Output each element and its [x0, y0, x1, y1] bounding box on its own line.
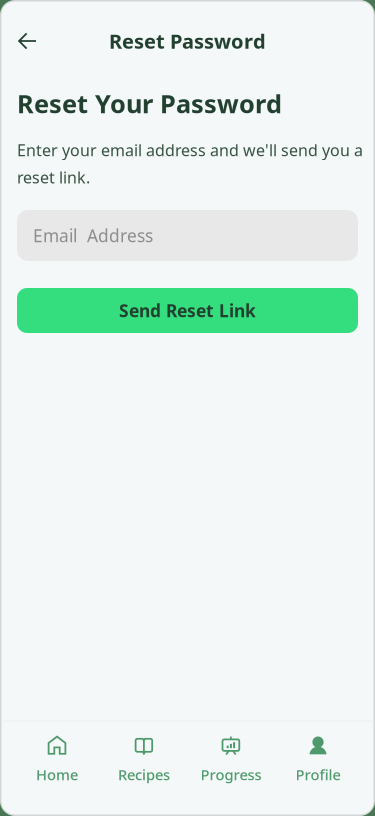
- staticText: Send Reset Link: [119, 299, 256, 322]
- staticText: Recipes: [118, 765, 170, 784]
- button[interactable]: Progress: [187, 721, 274, 791]
- staticText: Progress: [200, 765, 261, 784]
- button[interactable]: Send Reset Link: [17, 288, 358, 333]
- staticText: Profile: [295, 765, 340, 784]
- button[interactable]: Profile: [274, 721, 361, 791]
- staticText: Reset Password: [109, 28, 266, 54]
- button[interactable]: Home: [13, 721, 100, 791]
- staticText: reset link.: [17, 167, 90, 188]
- button[interactable]: Recipes: [100, 721, 187, 791]
- staticText: Reset Your Password: [17, 87, 282, 120]
- staticText: Email Address: [33, 224, 153, 247]
- staticText: Home: [36, 765, 78, 784]
- button[interactable]: Back: [9, 21, 48, 61]
- staticText: Enter your email address and we'll send …: [17, 139, 363, 161]
